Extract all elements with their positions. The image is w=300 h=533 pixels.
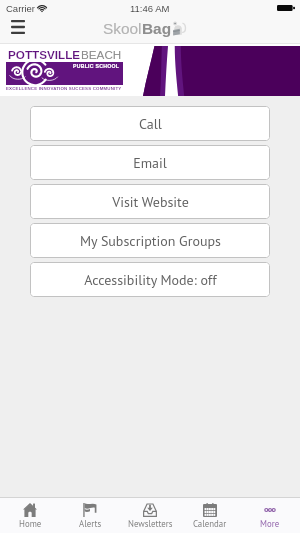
button[interactable]: Newsletters [120, 498, 180, 533]
button[interactable]: More [240, 498, 300, 533]
button[interactable]: Home [0, 498, 60, 533]
staticText: Skool [103, 20, 142, 37]
staticText: Newsletters [128, 518, 173, 529]
staticText: EXCELLENCE INNOVATION SUCCESS COMMUNITY [6, 86, 122, 91]
button[interactable]: Call [30, 106, 270, 141]
staticText: Visit Website [112, 193, 189, 211]
button[interactable]: Accessibility Mode: off [30, 262, 270, 297]
staticText: Accessibility Mode: off [84, 271, 217, 289]
staticText: Bag [142, 20, 172, 37]
button[interactable]: Visit Website [30, 184, 270, 219]
button[interactable]: Email [30, 145, 270, 180]
staticText: More [260, 518, 280, 529]
staticText: Alerts [79, 518, 102, 529]
staticText: Calendar [193, 518, 227, 529]
button[interactable]: Calendar [180, 498, 240, 533]
button[interactable]: Menu [0, 16, 36, 44]
staticText: 11:46 AM [130, 3, 170, 14]
staticText: BEACH [81, 48, 122, 61]
button[interactable]: My Subscription Groups [30, 223, 270, 258]
staticText: Email [133, 154, 167, 172]
staticText: Carrier [6, 3, 36, 14]
staticText: Call [139, 115, 162, 133]
staticText: Home [19, 518, 42, 529]
staticText: PUBLIC SCHOOL [73, 63, 120, 69]
staticText: POTTSVILLE [8, 48, 81, 61]
staticText: My Subscription Groups [80, 232, 221, 250]
button[interactable]: Alerts [60, 498, 120, 533]
